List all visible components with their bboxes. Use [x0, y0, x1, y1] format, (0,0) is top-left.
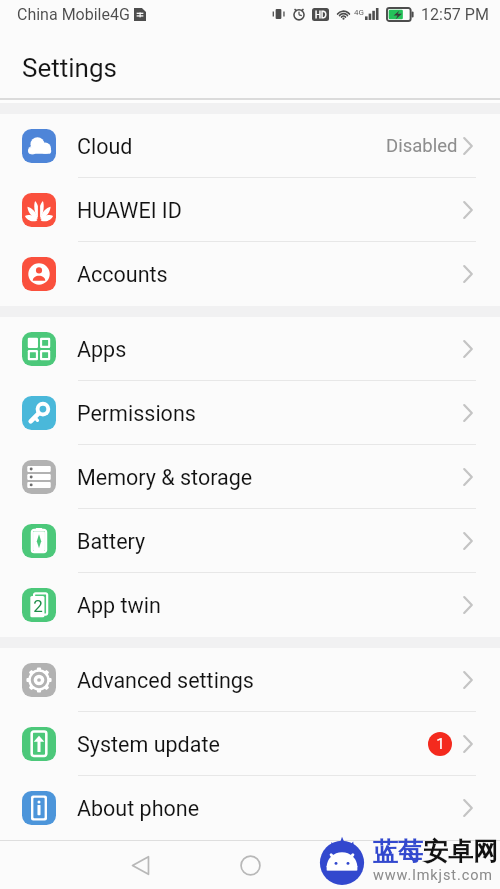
staticText: Battery	[77, 529, 146, 554]
button[interactable]: Accounts	[0, 242, 500, 306]
button[interactable]: Permissions	[0, 381, 500, 445]
button[interactable]: Battery	[0, 509, 500, 573]
staticText: 1	[436, 735, 445, 753]
staticText: 12:57 PM	[421, 5, 489, 24]
staticText: HUAWEI ID	[77, 198, 182, 223]
button[interactable]: Apps	[0, 317, 500, 381]
button[interactable]: Back	[118, 843, 162, 887]
staticText: 蓝莓	[373, 836, 423, 867]
staticText: China Mobile4G	[17, 5, 130, 24]
staticText: Cloud	[77, 134, 133, 159]
staticText: Settings	[22, 53, 117, 83]
staticText: www.lmkjst.com	[373, 867, 493, 884]
staticText: Disabled	[386, 135, 458, 157]
button[interactable]: About phone	[0, 776, 500, 840]
staticText: Permissions	[77, 401, 196, 426]
button[interactable]: Advanced settings	[0, 648, 500, 712]
button[interactable]: System update	[0, 712, 500, 776]
button[interactable]: 2	[0, 573, 500, 637]
staticText: Memory & storage	[77, 465, 253, 490]
staticText: About phone	[77, 796, 200, 821]
button[interactable]: Cloud	[0, 114, 500, 178]
staticText: 2	[33, 596, 43, 616]
button[interactable]: Memory & storage	[0, 445, 500, 509]
staticText: 安卓网	[423, 836, 498, 867]
button[interactable]: HUAWEI ID	[0, 178, 500, 242]
staticText: App twin	[77, 593, 161, 618]
staticText: Accounts	[77, 262, 168, 287]
button[interactable]: Home	[228, 843, 272, 887]
staticText: 4G	[354, 8, 364, 17]
staticText: Advanced settings	[77, 668, 254, 693]
staticText: HD	[315, 10, 327, 20]
staticText: Apps	[77, 337, 127, 362]
staticText: System update	[77, 732, 220, 757]
